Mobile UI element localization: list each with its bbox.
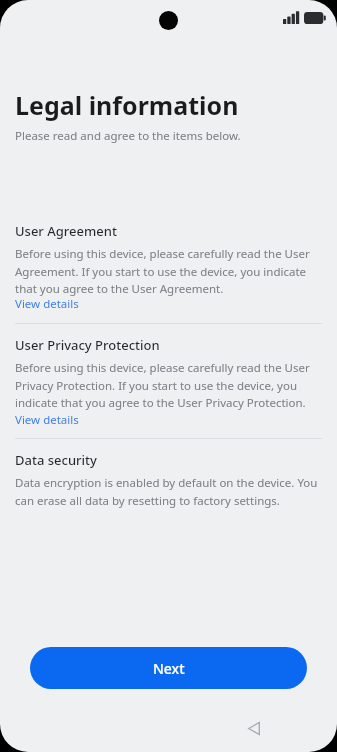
staticText: Data encryption is enabled by default on… <box>15 475 322 508</box>
staticText: Data security <box>15 451 97 469</box>
staticText: View details <box>15 296 79 312</box>
staticText: Before using this device, please careful… <box>15 360 322 427</box>
staticText: Before using this device, please careful… <box>15 246 322 296</box>
staticText: Please read and agree to the items below… <box>15 128 241 144</box>
staticText: Legal information <box>15 88 239 122</box>
button[interactable]: View details <box>15 296 79 312</box>
button[interactable]: Next <box>30 647 307 689</box>
staticText: User Agreement <box>15 222 117 240</box>
staticText: User Privacy Protection <box>15 336 160 354</box>
button[interactable]: Before using this device, please careful… <box>15 360 322 427</box>
button[interactable]: Back <box>238 712 270 744</box>
staticText: Next <box>153 659 185 678</box>
